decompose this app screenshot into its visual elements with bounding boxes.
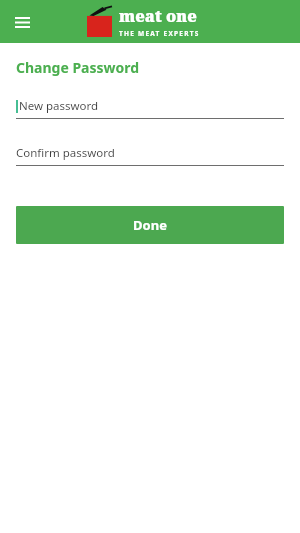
button[interactable]: Open navigation menu xyxy=(7,7,37,37)
staticText: Confirm password xyxy=(16,145,115,161)
staticText: Done xyxy=(133,216,167,234)
staticText: THE MEAT EXPERTS xyxy=(119,29,200,38)
button[interactable]: Done xyxy=(16,206,284,244)
button[interactable]: New password xyxy=(16,98,284,119)
button[interactable]: Meat One logo xyxy=(87,5,200,38)
staticText: meat one xyxy=(119,5,197,27)
staticText: New password xyxy=(19,98,99,114)
staticText: Change Password xyxy=(16,58,140,77)
button[interactable]: Confirm password xyxy=(16,145,284,166)
